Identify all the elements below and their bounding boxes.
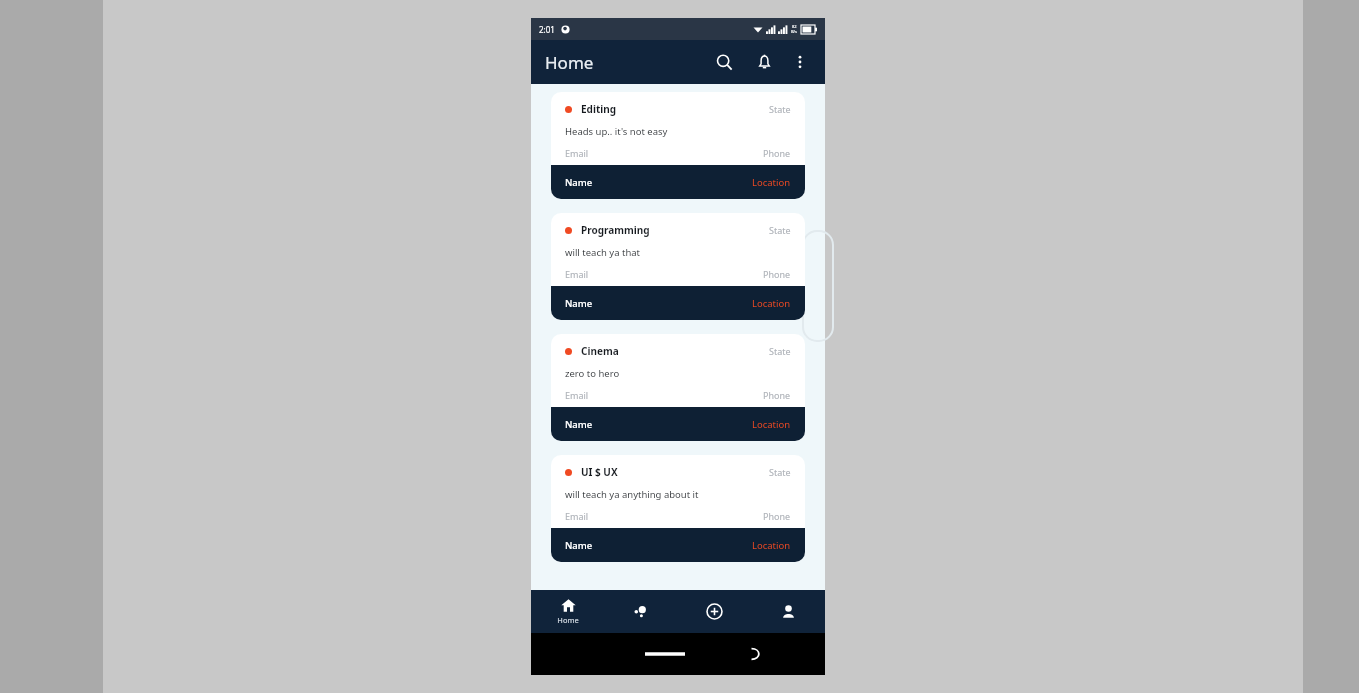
staticText: State [769,224,791,236]
staticText: zero to hero [565,367,620,380]
button[interactable]: Cinema [551,334,805,441]
staticText: Name [565,297,593,310]
button[interactable]: UI $ UX [551,455,805,562]
staticText: Email [565,510,589,522]
staticText: State [769,345,791,357]
button[interactable]: Profile [751,590,825,633]
button[interactable]: Activity [604,590,677,633]
staticText: State [769,103,791,115]
staticText: Name [565,176,593,189]
staticText: Location [752,539,791,552]
staticText: Cinema [581,344,619,358]
button[interactable]: Search [707,45,741,79]
staticText: 2:01 [539,24,555,35]
staticText: Heads up.. it's not easy [565,125,668,138]
staticText: Phone [763,510,791,522]
staticText: Location [752,418,791,431]
staticText: Programming [581,223,650,237]
staticText: Phone [763,147,791,159]
staticText: Email [565,268,589,280]
staticText: Editing [581,102,617,116]
staticText: 82 [792,24,797,29]
staticText: Home [545,51,594,74]
button[interactable]: Editing [551,92,805,199]
staticText: will teach ya that [565,246,641,259]
button[interactable]: Notifications [747,45,781,79]
staticText: Home [557,615,579,625]
button[interactable]: Programming [551,213,805,320]
staticText: Email [565,147,589,159]
staticText: B/s [791,29,798,34]
staticText: Location [752,297,791,310]
staticText: Phone [763,389,791,401]
staticText: Location [752,176,791,189]
staticText: Email [565,389,589,401]
button[interactable]: Add [677,590,751,633]
staticText: Name [565,539,593,552]
button[interactable]: More options [785,47,815,77]
staticText: State [769,466,791,478]
staticText: Name [565,418,593,431]
staticText: UI $ UX [581,465,618,479]
staticText: Phone [763,268,791,280]
staticText: will teach ya anything about it [565,488,699,501]
button[interactable]: Home [531,590,604,633]
